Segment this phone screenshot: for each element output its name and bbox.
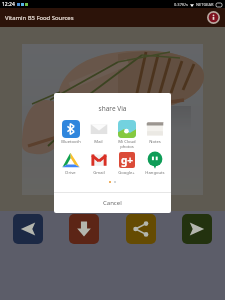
staticText: Google+ — [118, 170, 135, 176]
staticText: Vitamin B5 Food Sources — [5, 14, 74, 22]
button[interactable]: Cancel — [54, 193, 171, 213]
button[interactable]: Drive — [58, 151, 83, 176]
button[interactable]: Hangouts — [142, 151, 167, 176]
staticText: Bluetooth — [61, 139, 81, 145]
staticText: Mi Cloud photos — [118, 139, 136, 149]
button[interactable]: Next — [182, 214, 212, 244]
button[interactable]: Mail — [86, 120, 111, 145]
button[interactable]: Download — [69, 214, 99, 244]
staticText: Cancel — [103, 199, 122, 207]
staticText: NETGEAR — [196, 2, 214, 7]
staticText: share Via — [54, 104, 171, 113]
staticText: Hangouts — [145, 170, 165, 176]
button[interactable]: Notes — [142, 120, 167, 145]
staticText: g+ — [121, 153, 134, 167]
button[interactable]: Info — [207, 11, 220, 24]
staticText: Drive — [65, 170, 76, 176]
staticText: Mail — [94, 139, 103, 145]
button[interactable]: Mi Cloud photos — [114, 120, 139, 149]
button[interactable]: Gmail — [86, 151, 111, 176]
staticText: Notes — [149, 139, 161, 145]
staticText: Gmail — [93, 170, 105, 176]
button[interactable]: g+ — [114, 151, 139, 176]
button[interactable]: Share — [126, 214, 156, 244]
staticText: 0.37K/s — [174, 2, 188, 7]
button[interactable]: Previous — [13, 214, 43, 244]
button[interactable]: Bluetooth — [58, 120, 83, 145]
staticText: 12:24 — [2, 1, 15, 8]
